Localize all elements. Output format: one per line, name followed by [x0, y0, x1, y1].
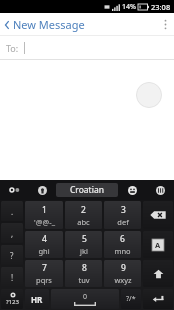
- button[interactable]: Input mode: [143, 231, 173, 258]
- button[interactable]: More options: [156, 13, 174, 36]
- button[interactable]: 2: [65, 201, 102, 229]
- staticText: 23:08: [151, 2, 171, 12]
- button[interactable]: Contact avatar: [136, 82, 162, 108]
- button[interactable]: To:: [0, 36, 174, 59]
- staticText: 6: [120, 233, 125, 245]
- button[interactable]: 5: [65, 231, 102, 258]
- staticText: !: [11, 272, 14, 283]
- button[interactable]: 8: [65, 260, 102, 287]
- button[interactable]: Settings: [146, 180, 174, 200]
- staticText: 7: [42, 262, 47, 274]
- staticText: 9: [121, 262, 126, 274]
- button[interactable]: Emoji: [118, 180, 146, 200]
- button[interactable]: Shift: [143, 260, 173, 287]
- staticText: 2: [81, 204, 86, 216]
- staticText: '@@-_: [34, 217, 55, 227]
- staticText: 0: [83, 292, 88, 302]
- staticText: New Message: [13, 17, 85, 32]
- staticText: ?: [10, 250, 14, 261]
- staticText: jkl: [80, 246, 88, 256]
- staticText: ?123: [6, 298, 19, 306]
- staticText: To:: [6, 42, 19, 54]
- button[interactable]: 4: [25, 231, 63, 258]
- button[interactable]: !: [1, 267, 23, 287]
- staticText: abc: [77, 217, 90, 227]
- staticText: 14%: [122, 2, 136, 12]
- button[interactable]: 3: [104, 201, 141, 229]
- button[interactable]: Backspace: [143, 201, 173, 229]
- button[interactable]: Handwriting: [28, 180, 56, 200]
- button[interactable]: 6: [104, 231, 141, 258]
- staticText: 5: [82, 233, 87, 245]
- button[interactable]: 7: [25, 260, 63, 287]
- button[interactable]: 1: [25, 201, 63, 229]
- staticText: A: [155, 240, 161, 250]
- button[interactable]: Symbols: [121, 289, 141, 309]
- staticText: def: [117, 217, 129, 227]
- staticText: wxyz: [114, 275, 132, 285]
- button[interactable]: Enter: [143, 289, 173, 309]
- button[interactable]: New Message: [0, 13, 93, 36]
- staticText: HR: [31, 294, 43, 305]
- button[interactable]: .: [1, 201, 23, 221]
- staticText: ?/*: [126, 294, 136, 304]
- staticText: 3: [121, 204, 126, 216]
- staticText: .: [11, 206, 14, 217]
- staticText: ,: [11, 228, 14, 239]
- button[interactable]: Voice input: [0, 180, 28, 200]
- button[interactable]: ,: [1, 223, 23, 243]
- staticText: pqrs: [36, 275, 52, 285]
- staticText: tuv: [78, 275, 90, 285]
- button[interactable]: Symbols and settings: [1, 289, 23, 309]
- staticText: 1: [42, 204, 47, 216]
- staticText: 4: [42, 233, 47, 245]
- staticText: mno: [114, 246, 131, 256]
- button[interactable]: HR: [25, 289, 49, 309]
- button[interactable]: 9: [104, 260, 141, 287]
- button[interactable]: Space: [51, 289, 119, 309]
- button[interactable]: ?: [1, 245, 23, 265]
- button[interactable]: Croatian: [56, 183, 118, 197]
- staticText: ghi: [38, 246, 50, 256]
- staticText: Croatian: [70, 184, 104, 196]
- staticText: 8: [82, 262, 87, 274]
